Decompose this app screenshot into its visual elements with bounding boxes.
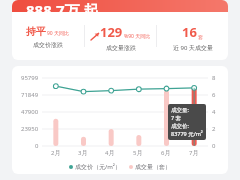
staticText: 成交量涨跌 [106, 44, 136, 52]
staticText: 47900 [21, 108, 39, 116]
button[interactable]: 成交量（套） [129, 163, 171, 171]
staticText: 129 [100, 23, 123, 41]
staticText: 持平 [26, 25, 46, 38]
staticText: 888.7万 起 [26, 0, 99, 18]
button[interactable]: 888.7万 起 [12, 0, 228, 18]
button[interactable]: 129 [85, 21, 156, 52]
staticText: 23950 [21, 125, 39, 133]
staticText: 近 90 天成交量 [173, 44, 213, 52]
staticText: 2 [212, 125, 216, 133]
button[interactable]: 成交量: [171, 106, 203, 138]
staticText: 成交量: [171, 106, 189, 114]
staticText: 4月 [105, 149, 115, 157]
staticText: 套 [198, 34, 203, 40]
button[interactable]: 16 [157, 21, 228, 52]
staticText: 成交量（套） [135, 163, 171, 171]
button[interactable]: 持平 [12, 23, 84, 49]
staticText: 16 [182, 23, 197, 41]
staticText: 8 [212, 74, 216, 82]
staticText: 2月 [51, 149, 61, 157]
staticText: 5月 [133, 149, 143, 157]
button[interactable]: 95799 [12, 66, 228, 174]
staticText: 7月 [189, 149, 199, 157]
staticText: 83779 元/m² [171, 130, 203, 138]
staticText: 7 套 [171, 114, 182, 122]
button[interactable]: 成交价（元/m²） [69, 163, 121, 171]
staticText: 6月 [161, 149, 171, 157]
staticText: 95799 [21, 74, 39, 82]
staticText: %90 天同比 [124, 33, 151, 40]
staticText: 90 天同比 [47, 30, 70, 37]
staticText: 4 [212, 108, 216, 116]
staticText: 成交价涨跌 [33, 41, 63, 49]
staticText: 成交价（元/m²） [75, 163, 121, 171]
staticText: 3月 [78, 149, 88, 157]
staticText: 0 [35, 142, 39, 150]
staticText: 71849 [21, 91, 39, 99]
staticText: 成交价: [171, 122, 189, 130]
staticText: 0 [212, 142, 216, 150]
staticText: 6 [212, 91, 216, 99]
